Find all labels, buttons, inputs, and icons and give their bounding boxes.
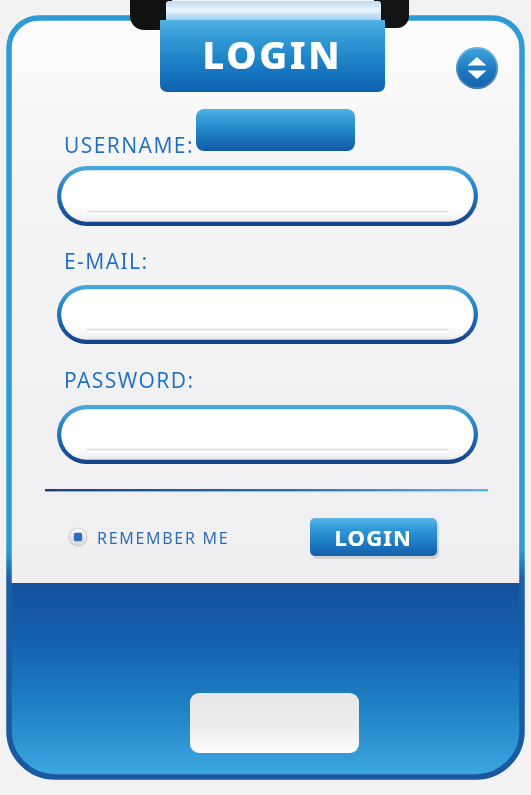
button[interactable]: Username field [57,166,478,226]
button[interactable]: Home [190,692,359,752]
button[interactable]: Password field [57,405,478,464]
button[interactable]: E-mail field [57,285,478,344]
button[interactable]: Remember me [64,521,234,553]
button[interactable]: Sort up or down [457,47,499,89]
button[interactable]: Login [310,518,437,556]
